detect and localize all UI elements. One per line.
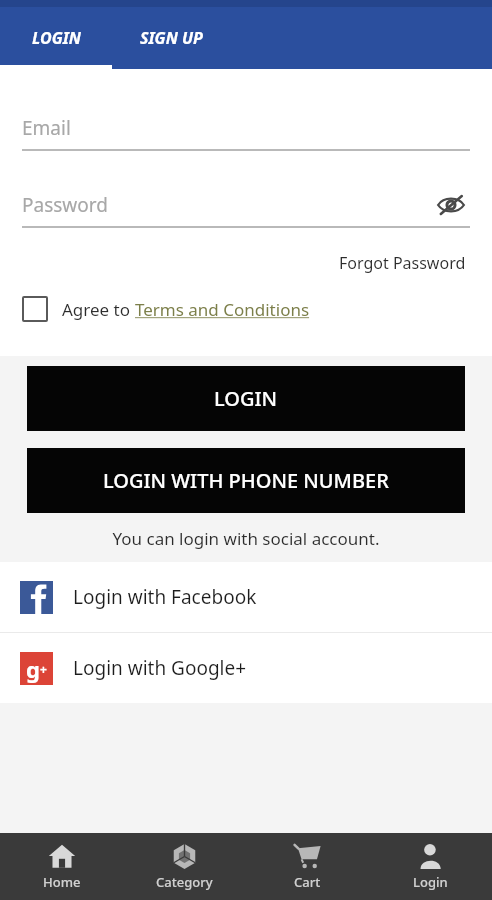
- button[interactable]: LOGIN: [0, 7, 112, 69]
- button[interactable]: Home: [0, 833, 123, 900]
- button[interactable]: Forgot Password: [335, 248, 470, 278]
- staticText: Home: [43, 873, 81, 891]
- staticText: LOGIN: [32, 27, 81, 49]
- staticText: You can login with social account.: [0, 527, 492, 550]
- button[interactable]: Password: [22, 192, 108, 218]
- staticText: Category: [156, 873, 213, 891]
- button[interactable]: Login with Facebook: [0, 562, 492, 632]
- button[interactable]: Category: [123, 833, 246, 900]
- staticText: Forgot Password: [339, 252, 466, 274]
- staticText: Login with Google+: [73, 655, 247, 681]
- button[interactable]: g: [0, 633, 492, 703]
- button[interactable]: SIGN UP: [112, 7, 230, 69]
- staticText: Login: [413, 873, 448, 891]
- button[interactable]: LOGIN WITH PHONE NUMBER: [27, 448, 465, 513]
- button[interactable]: Login: [369, 833, 492, 900]
- button[interactable]: Email: [22, 107, 470, 149]
- button[interactable]: Agree to: [22, 296, 470, 322]
- staticText: Agree to: [62, 298, 135, 321]
- staticText: LOGIN: [214, 385, 278, 412]
- staticText: SIGN UP: [140, 27, 203, 49]
- button[interactable]: LOGIN: [27, 366, 465, 431]
- staticText: +: [40, 661, 47, 677]
- staticText: g: [26, 654, 40, 684]
- button[interactable]: Show password: [432, 186, 470, 224]
- staticText: Login with Facebook: [73, 584, 257, 610]
- staticText: Cart: [294, 873, 321, 891]
- button[interactable]: Cart: [246, 833, 369, 900]
- staticText: Email: [22, 115, 71, 141]
- staticText: Terms and Conditions: [135, 298, 310, 321]
- staticText: LOGIN WITH PHONE NUMBER: [103, 467, 389, 494]
